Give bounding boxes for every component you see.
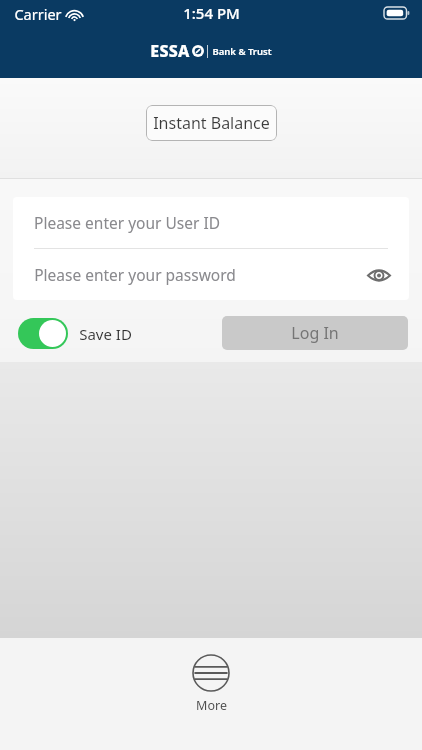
staticText: More (196, 697, 227, 714)
staticText: 1:54 PM (183, 3, 240, 23)
staticText: Carrier (14, 4, 62, 24)
button[interactable]: Please enter your password (13, 249, 409, 300)
staticText: Instant Balance (153, 112, 270, 134)
button[interactable]: Save ID (18, 318, 132, 349)
button[interactable]: Log In (222, 316, 408, 350)
button[interactable]: Please enter your User ID (13, 197, 409, 248)
staticText: Save ID (79, 324, 132, 344)
button[interactable]: Instant Balance (146, 105, 277, 141)
staticText: Log In (291, 322, 339, 344)
button[interactable]: More (192, 654, 230, 714)
staticText: ESSA (150, 40, 190, 62)
staticText: Please enter your User ID (34, 212, 220, 233)
button[interactable]: Show password (363, 259, 395, 291)
staticText: Please enter your password (34, 264, 236, 285)
staticText: Bank & Trust (212, 45, 272, 58)
